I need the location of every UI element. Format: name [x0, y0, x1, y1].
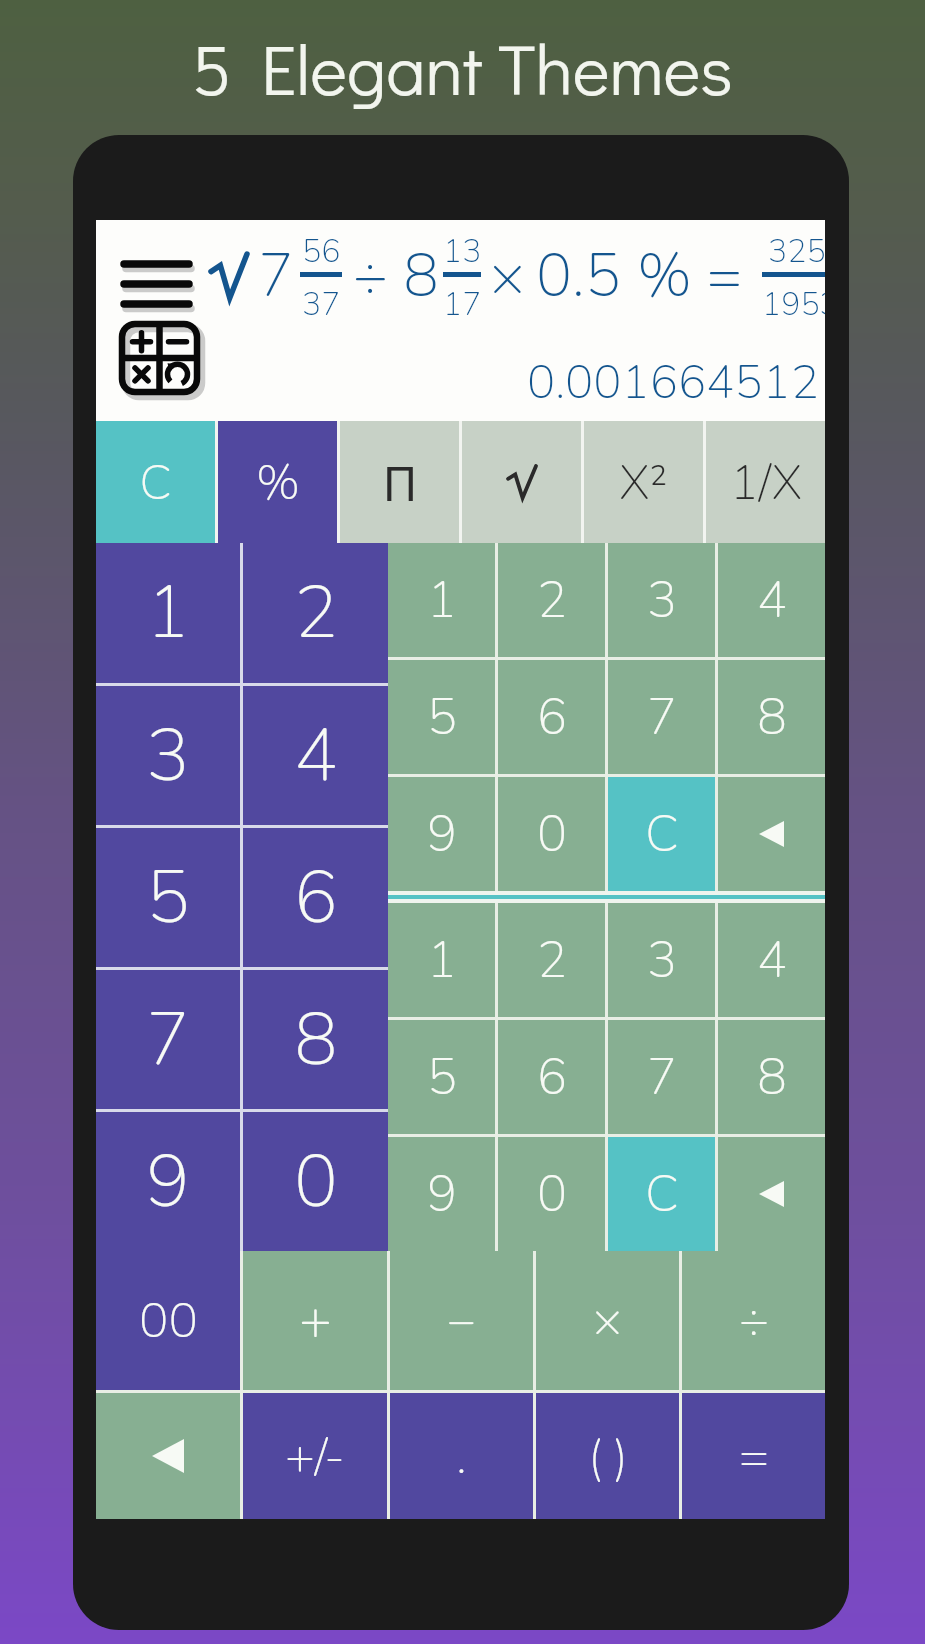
- button[interactable]: 7: [96, 970, 240, 1109]
- staticText: %: [637, 235, 692, 317]
- staticText: +/-: [285, 1423, 345, 1490]
- button[interactable]: 4: [718, 903, 825, 1017]
- button[interactable]: 4: [718, 543, 825, 657]
- staticText: 3255: [768, 230, 825, 270]
- button[interactable]: Π: [340, 421, 459, 543]
- staticText: 6: [294, 848, 338, 948]
- staticText: 56: [302, 230, 341, 270]
- button[interactable]: 7: [608, 1020, 715, 1134]
- staticText: 0: [537, 1160, 567, 1228]
- button[interactable]: ×: [536, 1251, 679, 1390]
- staticText: 6: [537, 1043, 567, 1111]
- button[interactable]: 0: [498, 1137, 605, 1251]
- button[interactable]: Menu: [120, 258, 200, 310]
- staticText: 6: [537, 683, 567, 751]
- staticText: 5: [427, 683, 457, 751]
- staticText: 4: [757, 566, 787, 634]
- staticText: 5: [146, 848, 190, 948]
- button[interactable]: Backspace: [718, 777, 825, 891]
- staticText: 0: [537, 800, 567, 868]
- button[interactable]: C: [608, 777, 715, 891]
- staticText: =: [739, 1423, 769, 1490]
- staticText: 2: [294, 563, 338, 663]
- staticText: 5 Elegant Themes: [192, 22, 733, 114]
- button[interactable]: 4: [243, 686, 388, 825]
- staticText: 0.5: [536, 235, 621, 317]
- button[interactable]: =: [682, 1393, 825, 1519]
- staticText: 4: [757, 926, 787, 994]
- button[interactable]: 6: [243, 828, 388, 967]
- staticText: ÷: [353, 237, 388, 316]
- button[interactable]: +: [243, 1251, 387, 1390]
- button[interactable]: 5: [388, 1020, 495, 1134]
- button[interactable]: Backspace: [718, 1137, 825, 1251]
- button[interactable]: +/-: [243, 1393, 387, 1519]
- staticText: 3: [647, 926, 677, 994]
- button[interactable]: 7: [608, 660, 715, 774]
- staticText: 00: [139, 1287, 198, 1354]
- staticText: 17: [443, 283, 481, 323]
- button[interactable]: Backspace: [96, 1393, 240, 1519]
- staticText: C: [645, 800, 679, 868]
- staticText: 1: [427, 926, 457, 994]
- button[interactable]: 1: [388, 543, 495, 657]
- button[interactable]: 00: [96, 1251, 240, 1390]
- button[interactable]: ÷: [682, 1251, 825, 1390]
- button[interactable]: X²: [584, 421, 703, 543]
- button[interactable]: 8: [243, 970, 388, 1109]
- button[interactable]: −: [390, 1251, 533, 1390]
- staticText: .: [456, 1423, 467, 1490]
- staticText: 3: [146, 706, 190, 806]
- button[interactable]: C: [96, 421, 215, 543]
- staticText: ×: [593, 1288, 622, 1353]
- button[interactable]: 5: [388, 660, 495, 774]
- staticText: 5: [427, 1043, 457, 1111]
- button[interactable]: 1: [388, 903, 495, 1017]
- staticText: 3: [647, 566, 677, 634]
- staticText: 37: [302, 283, 341, 323]
- staticText: 4: [294, 706, 338, 806]
- button[interactable]: 0: [498, 777, 605, 891]
- staticText: 8: [757, 1043, 787, 1111]
- button[interactable]: .: [390, 1393, 533, 1519]
- button[interactable]: 0: [243, 1112, 388, 1251]
- button[interactable]: ( ): [536, 1393, 679, 1519]
- button[interactable]: 9: [388, 777, 495, 891]
- button[interactable]: 2: [498, 903, 605, 1017]
- button[interactable]: %: [218, 421, 337, 543]
- staticText: 8: [757, 683, 787, 751]
- button[interactable]: 2: [498, 543, 605, 657]
- staticText: 9: [427, 800, 457, 868]
- button[interactable]: 8: [718, 1020, 825, 1134]
- staticText: X²: [619, 450, 668, 515]
- button[interactable]: 9: [96, 1112, 240, 1251]
- staticText: C: [645, 1160, 679, 1228]
- staticText: 8: [294, 990, 338, 1090]
- button[interactable]: 1/X: [706, 421, 825, 543]
- button[interactable]: Square root: [462, 421, 581, 543]
- staticText: 7: [647, 683, 677, 751]
- button[interactable]: 6: [498, 1020, 605, 1134]
- staticText: 9: [427, 1160, 457, 1228]
- button[interactable]: 9: [388, 1137, 495, 1251]
- button[interactable]: 3: [96, 686, 240, 825]
- button[interactable]: 5: [96, 828, 240, 967]
- button[interactable]: 3: [608, 543, 715, 657]
- staticText: =: [707, 237, 742, 316]
- staticText: 7: [146, 990, 190, 1090]
- staticText: 1: [427, 566, 457, 634]
- staticText: 1/X: [730, 450, 802, 515]
- staticText: C: [139, 450, 172, 515]
- button[interactable]: 6: [498, 660, 605, 774]
- button[interactable]: 3: [608, 903, 715, 1017]
- button[interactable]: C: [608, 1137, 715, 1251]
- button[interactable]: 2: [243, 543, 388, 683]
- staticText: ( ): [588, 1423, 628, 1490]
- staticText: Π: [382, 450, 418, 515]
- staticText: 1: [146, 563, 190, 663]
- staticText: %: [256, 450, 300, 515]
- button[interactable]: 1: [96, 543, 240, 683]
- staticText: 2: [537, 566, 567, 634]
- button[interactable]: Calculator mode: [118, 320, 202, 396]
- button[interactable]: 8: [718, 660, 825, 774]
